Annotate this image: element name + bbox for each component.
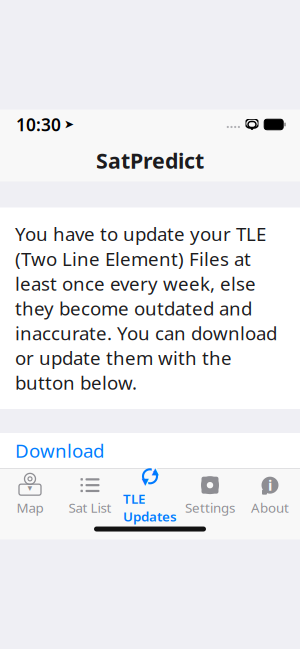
staticText: About bbox=[251, 499, 289, 516]
staticText: SatPredict bbox=[96, 146, 204, 175]
staticText: Map bbox=[16, 499, 43, 516]
staticText: ▾ bbox=[27, 482, 32, 493]
staticText: Download bbox=[15, 438, 104, 463]
staticText: TLE Updates bbox=[123, 490, 177, 525]
staticText: You have to update your TLE (Two Line El… bbox=[15, 221, 277, 395]
staticText: Sat List bbox=[68, 499, 111, 516]
staticText: ▲ bbox=[151, 466, 158, 476]
button[interactable]: i bbox=[240, 468, 300, 517]
button[interactable]: Sat List bbox=[60, 468, 120, 517]
button[interactable]: ▾ bbox=[0, 468, 60, 517]
button[interactable]: Download bbox=[0, 433, 300, 468]
staticText: ▼ bbox=[141, 476, 148, 487]
staticText: 10:30 bbox=[16, 113, 61, 136]
button[interactable]: Settings bbox=[180, 468, 240, 517]
staticText: Settings bbox=[185, 499, 235, 516]
button[interactable]: ▲ bbox=[120, 468, 180, 517]
staticText: i bbox=[268, 475, 272, 495]
staticText: ➤ bbox=[64, 117, 74, 131]
